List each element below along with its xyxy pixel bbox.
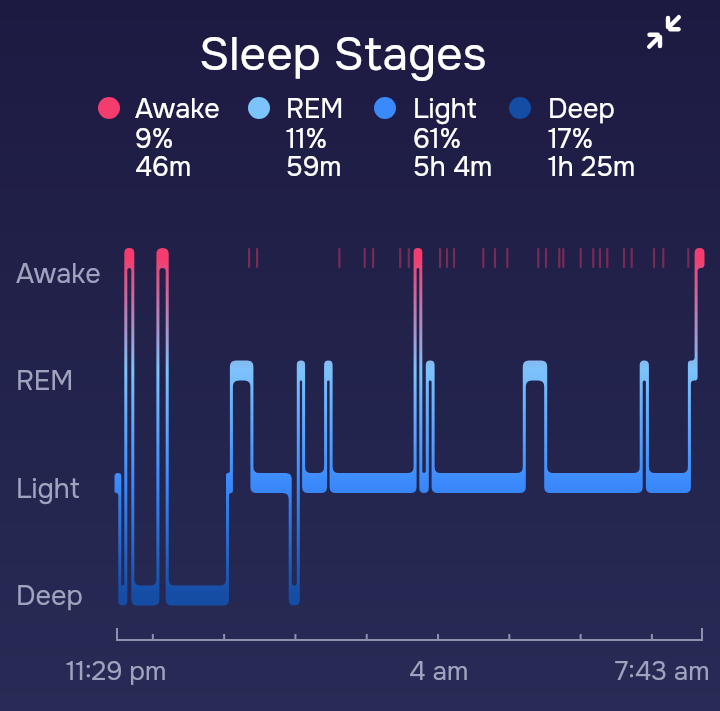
staticText: REM <box>16 364 74 398</box>
staticText: Awake <box>16 257 101 291</box>
staticText: 7:43 am <box>615 655 710 688</box>
staticText: Deep <box>16 579 83 613</box>
staticText: Awake <box>135 92 220 126</box>
staticText: 9% <box>135 122 174 156</box>
staticText: Deep <box>548 92 615 126</box>
staticText: 11% <box>286 122 328 156</box>
staticText: 17% <box>548 122 594 156</box>
staticText: 46m <box>135 150 192 184</box>
staticText: 1h 25m <box>548 150 636 184</box>
staticText: 61% <box>413 122 462 156</box>
button[interactable]: Collapse <box>640 8 688 56</box>
staticText: Sleep Stages <box>199 25 487 84</box>
staticText: REM <box>286 92 344 126</box>
staticText: 11:29 pm <box>66 655 167 688</box>
staticText: 5h 4m <box>413 150 493 184</box>
staticText: 59m <box>286 150 342 184</box>
staticText: Light <box>413 92 477 126</box>
staticText: Light <box>16 472 80 506</box>
staticText: 4 am <box>409 655 469 688</box>
